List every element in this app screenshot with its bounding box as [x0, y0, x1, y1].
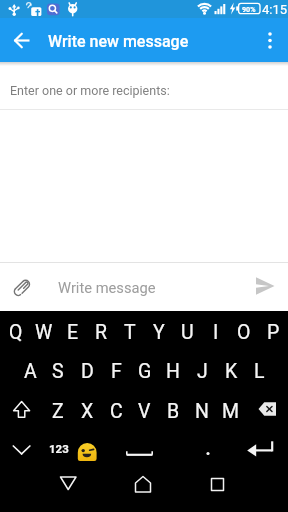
button[interactable]: Y — [145, 313, 173, 351]
staticText: P — [267, 321, 280, 344]
button[interactable]: K — [217, 352, 245, 390]
button[interactable]: 123 — [42, 431, 76, 465]
button[interactable]: I — [202, 313, 230, 351]
staticText: K — [225, 360, 238, 383]
staticText: R — [95, 321, 108, 344]
staticText: Y — [153, 321, 165, 344]
staticText: T — [124, 321, 136, 344]
staticText: 90% — [242, 5, 256, 13]
staticText: V — [138, 400, 151, 423]
staticText: B — [167, 400, 180, 423]
button[interactable]: V — [130, 392, 158, 430]
staticText: 123 — [49, 442, 69, 455]
staticText: W — [35, 321, 53, 344]
button[interactable] — [2, 389, 42, 425]
button[interactable]: Enter one or more recipients: — [10, 78, 250, 102]
button[interactable] — [120, 466, 168, 506]
button[interactable]: D — [73, 352, 101, 390]
button[interactable]: W — [30, 313, 58, 351]
staticText: X — [81, 400, 94, 423]
staticText: C — [110, 400, 123, 423]
button[interactable] — [76, 430, 98, 464]
button[interactable]: M — [217, 392, 245, 430]
staticText: N — [195, 400, 209, 423]
button[interactable]: C — [102, 392, 130, 430]
button[interactable]: F — [102, 352, 130, 390]
staticText: H — [166, 360, 180, 383]
staticText: J — [197, 360, 208, 383]
staticText: Write message — [58, 279, 156, 296]
button[interactable] — [232, 428, 276, 464]
button[interactable]: Q — [2, 313, 30, 351]
button[interactable]: G — [131, 352, 159, 390]
button[interactable]: N — [188, 392, 216, 430]
staticText: U — [181, 321, 194, 344]
button[interactable] — [252, 23, 288, 59]
staticText: M — [222, 400, 240, 423]
button[interactable] — [246, 389, 286, 425]
button[interactable] — [6, 271, 36, 301]
staticText: S — [52, 360, 64, 383]
button[interactable] — [196, 428, 220, 464]
staticText: F — [111, 360, 122, 383]
staticText: O — [237, 321, 251, 344]
staticText: Z — [52, 400, 64, 423]
button[interactable]: U — [173, 313, 201, 351]
button[interactable]: R — [87, 313, 115, 351]
button[interactable] — [44, 466, 92, 506]
button[interactable]: J — [188, 352, 216, 390]
button[interactable]: X — [73, 392, 101, 430]
button[interactable]: L — [245, 352, 273, 390]
button[interactable]: P — [259, 313, 287, 351]
button[interactable]: E — [59, 313, 87, 351]
staticText: I — [213, 321, 219, 344]
button[interactable]: Write message — [58, 272, 218, 302]
button[interactable]: H — [159, 352, 187, 390]
button[interactable] — [2, 428, 42, 464]
staticText: Enter one or more recipients: — [10, 83, 170, 98]
button[interactable]: A — [16, 352, 44, 390]
staticText: A — [24, 360, 37, 383]
button[interactable] — [248, 271, 282, 301]
staticText: Write new message — [48, 32, 189, 51]
button[interactable]: S — [44, 352, 72, 390]
button[interactable]: Z — [44, 392, 72, 430]
button[interactable]: T — [116, 313, 144, 351]
staticText: G — [138, 360, 152, 383]
staticText: 4:15 — [262, 2, 288, 17]
staticText: D — [81, 360, 94, 383]
button[interactable]: O — [230, 313, 258, 351]
staticText: E — [67, 321, 79, 344]
button[interactable] — [104, 428, 180, 464]
button[interactable] — [194, 466, 242, 506]
staticText: Q — [9, 321, 23, 344]
staticText: L — [254, 360, 265, 383]
button[interactable] — [4, 23, 40, 59]
button[interactable]: B — [159, 392, 187, 430]
